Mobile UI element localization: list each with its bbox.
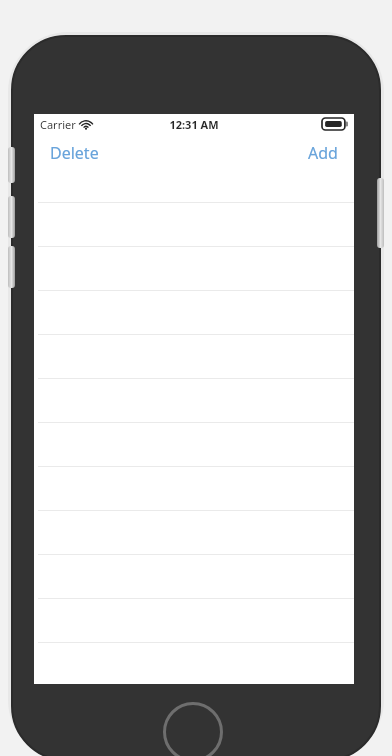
button[interactable]: [34, 554, 354, 598]
staticText: Add: [308, 142, 338, 164]
button[interactable]: [34, 598, 354, 642]
staticText: Delete: [50, 142, 99, 164]
staticText: 12:31 AM: [169, 117, 219, 132]
button[interactable]: [34, 466, 354, 510]
staticText: Carrier: [40, 117, 76, 132]
button[interactable]: [34, 510, 354, 554]
button[interactable]: [34, 334, 354, 378]
button[interactable]: Add: [292, 136, 354, 170]
button[interactable]: [34, 378, 354, 422]
button[interactable]: [34, 642, 354, 684]
button[interactable]: Delete: [34, 136, 115, 170]
button[interactable]: [34, 422, 354, 466]
button[interactable]: Home: [163, 702, 223, 756]
button[interactable]: [34, 246, 354, 290]
button[interactable]: [34, 202, 354, 246]
button[interactable]: [34, 290, 354, 334]
